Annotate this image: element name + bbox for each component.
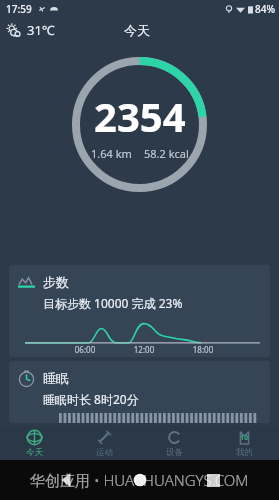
- staticText: 17:59: [6, 2, 32, 16]
- button[interactable]: 步数: [9, 265, 270, 357]
- button[interactable]: 睡眠: [9, 361, 270, 423]
- staticText: 步数: [43, 274, 69, 290]
- staticText: 我的: [236, 447, 253, 458]
- staticText: 1.64 km: [91, 146, 132, 161]
- staticText: 10: [240, 433, 249, 443]
- staticText: 睡眠时长 8时20分: [43, 391, 139, 407]
- staticText: 今天: [124, 22, 150, 38]
- button[interactable]: 31℃: [6, 21, 55, 39]
- staticText: 设备: [166, 447, 183, 458]
- staticText: 31℃: [27, 21, 55, 39]
- button[interactable]: Recents: [207, 474, 220, 487]
- staticText: 2354: [94, 89, 186, 143]
- staticText: 18:00: [184, 344, 222, 355]
- staticText: 06:00: [66, 344, 104, 355]
- staticText: 华创应用 • HUACHUANGYS.COM: [30, 470, 249, 490]
- button[interactable]: Back: [60, 473, 74, 487]
- button[interactable]: 10: [209, 426, 279, 460]
- button[interactable]: 设备: [139, 426, 209, 460]
- staticText: 目标步数 10000 完成 23%: [43, 295, 183, 311]
- staticText: 84%: [255, 2, 275, 16]
- staticText: 运动: [96, 447, 113, 458]
- button[interactable]: 运动: [69, 426, 139, 460]
- staticText: 12:00: [125, 344, 163, 355]
- button[interactable]: Home: [133, 473, 147, 487]
- staticText: 今天: [26, 447, 43, 458]
- staticText: 58.2 kcal: [144, 146, 189, 161]
- staticText: 睡眠: [43, 370, 69, 386]
- button[interactable]: 今天: [0, 426, 69, 460]
